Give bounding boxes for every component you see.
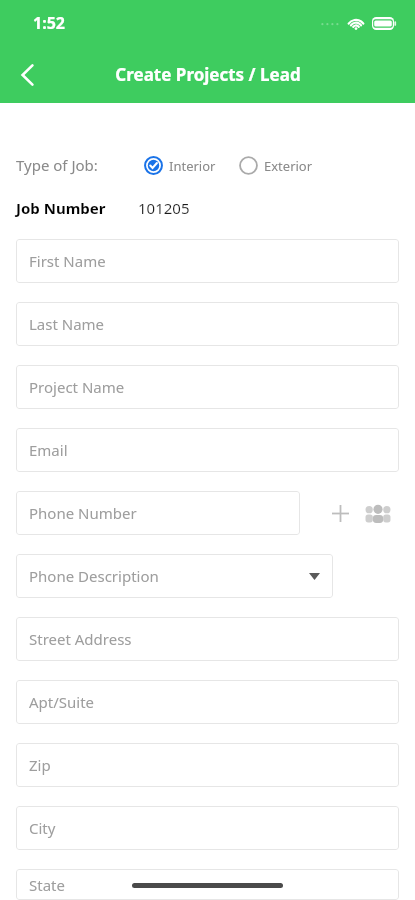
- staticText: Phone Description: [29, 566, 159, 586]
- button[interactable]: City: [16, 806, 399, 850]
- button[interactable]: Back: [4, 52, 50, 98]
- staticText: Apt/Suite: [29, 692, 95, 712]
- staticText: First Name: [29, 251, 106, 271]
- button[interactable]: State: [16, 869, 399, 900]
- staticText: Last Name: [29, 314, 105, 334]
- staticText: Create Projects / Lead: [115, 63, 301, 86]
- staticText: Phone Number: [29, 503, 137, 523]
- staticText: Zip: [29, 755, 51, 775]
- button[interactable]: Street Address: [16, 617, 399, 661]
- staticText: 1:52: [33, 12, 65, 34]
- button[interactable]: Phone Description: [16, 554, 333, 598]
- button[interactable]: Interior: [144, 156, 216, 175]
- button[interactable]: Exterior: [239, 156, 313, 175]
- staticText: Email: [29, 440, 68, 460]
- button[interactable]: Apt/Suite: [16, 680, 399, 724]
- staticText: Exterior: [264, 157, 313, 175]
- button[interactable]: Phone Number: [16, 491, 300, 535]
- button[interactable]: Last Name: [16, 302, 399, 346]
- button[interactable]: Project Name: [16, 365, 399, 409]
- staticText: Type of Job:: [16, 155, 98, 175]
- staticText: State: [29, 875, 65, 895]
- button[interactable]: Zip: [16, 743, 399, 787]
- button[interactable]: Add phone number: [325, 498, 355, 528]
- staticText: Street Address: [29, 629, 132, 649]
- staticText: 101205: [138, 198, 190, 218]
- staticText: City: [29, 818, 56, 838]
- staticText: Job Number: [16, 198, 106, 218]
- staticText: Interior: [169, 157, 216, 175]
- button[interactable]: First Name: [16, 239, 399, 283]
- staticText: Project Name: [29, 377, 125, 397]
- button[interactable]: Email: [16, 428, 399, 472]
- button[interactable]: Choose from contacts: [361, 496, 395, 530]
